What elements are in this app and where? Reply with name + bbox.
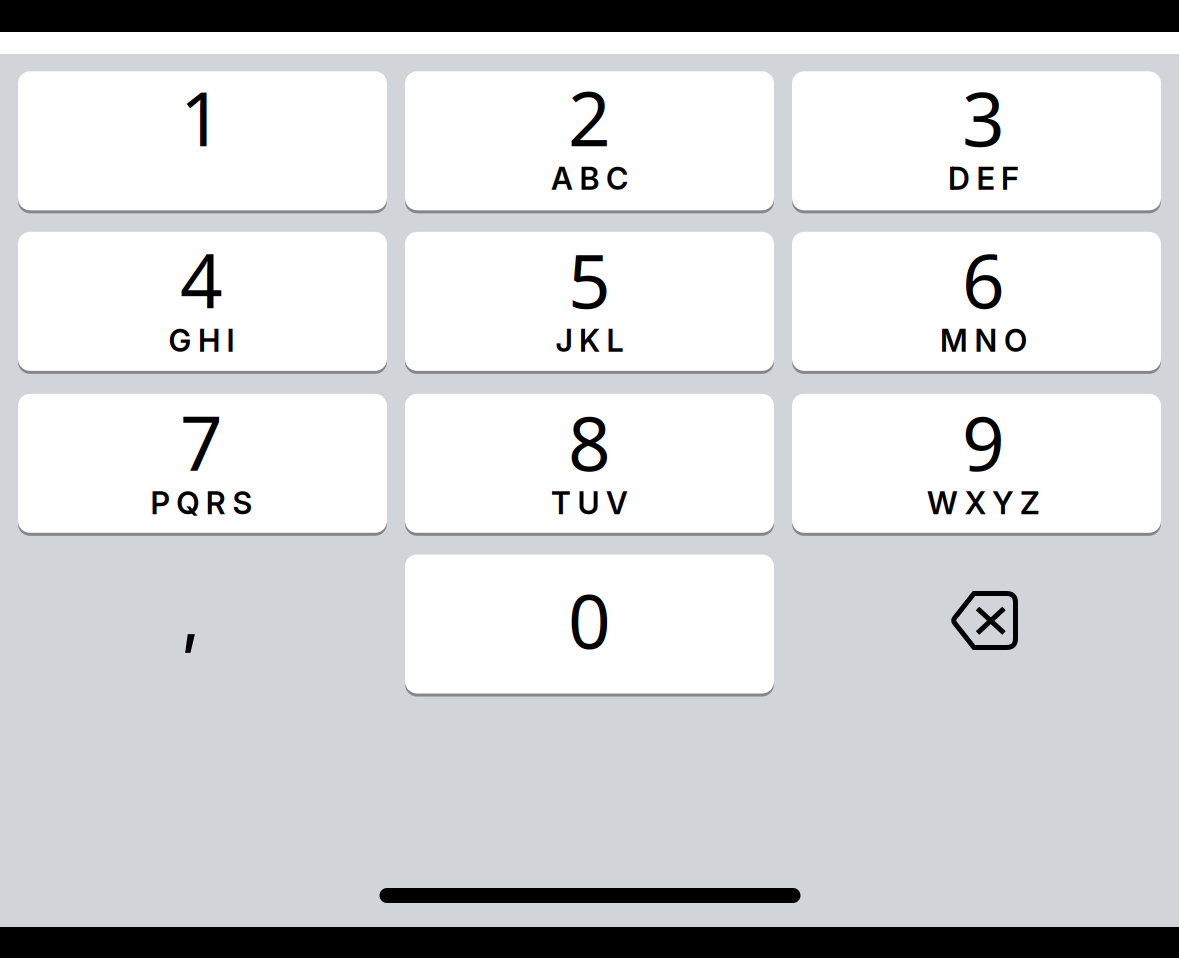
staticText: 4 <box>180 230 223 329</box>
staticText: TUV <box>551 484 628 522</box>
button[interactable]: 1 <box>18 71 387 210</box>
staticText: MNO <box>940 322 1027 359</box>
staticText: 7 <box>180 392 223 491</box>
button[interactable]: 8 <box>405 394 774 533</box>
staticText: 9 <box>962 392 1005 491</box>
staticText: 3 <box>962 68 1005 167</box>
staticText: GHI <box>168 322 235 359</box>
staticText: DEF <box>948 160 1019 197</box>
button[interactable]: 5 <box>405 232 774 371</box>
button[interactable]: 0 <box>405 554 774 693</box>
button[interactable]: 3 <box>792 71 1161 210</box>
staticText: JKL <box>555 322 624 359</box>
button[interactable]: 2 <box>405 71 774 210</box>
button[interactable]: 6 <box>792 232 1161 371</box>
button[interactable]: Delete <box>792 554 1161 693</box>
staticText: 0 <box>568 570 611 669</box>
staticText: 5 <box>568 230 611 329</box>
staticText: 8 <box>568 392 611 491</box>
button[interactable]: 7 <box>18 394 387 533</box>
staticText: 1 <box>180 68 223 167</box>
staticText: 6 <box>962 230 1005 329</box>
button[interactable]: Comma <box>18 554 387 693</box>
staticText: ABC <box>551 160 628 197</box>
button[interactable]: 9 <box>792 394 1161 533</box>
staticText: WXYZ <box>927 484 1040 522</box>
button[interactable]: 4 <box>18 232 387 371</box>
staticText: 2 <box>568 68 611 167</box>
staticText: PQRS <box>151 484 252 522</box>
